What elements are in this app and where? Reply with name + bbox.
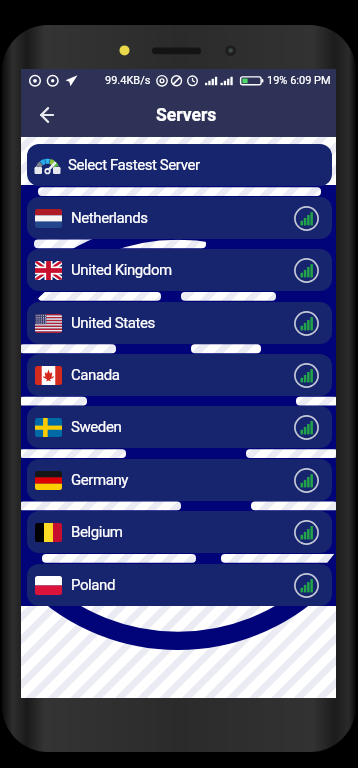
staticText: Poland [71, 576, 115, 594]
staticText: Belgium [71, 523, 123, 541]
button[interactable]: Belgium [27, 511, 332, 553]
staticText: United States [71, 314, 155, 332]
button[interactable]: Canada [27, 354, 332, 396]
staticText: Select Fastest Server [68, 156, 200, 174]
button[interactable]: Poland [27, 564, 332, 606]
button[interactable]: United States [27, 302, 332, 344]
staticText: Canada [71, 366, 120, 384]
staticText: Servers [156, 105, 217, 126]
button[interactable]: Select Fastest Server [27, 144, 332, 186]
staticText: Netherlands [71, 209, 148, 227]
button[interactable]: Sweden [27, 406, 332, 448]
staticText: Sweden [71, 418, 122, 436]
staticText: 19% 6:09 PM [267, 74, 331, 87]
staticText: 99.4KB/s [105, 74, 151, 87]
staticText: United Kingdom [71, 261, 172, 279]
button[interactable]: Netherlands [27, 197, 332, 239]
button[interactable]: Back [27, 93, 71, 137]
button[interactable]: United Kingdom [27, 249, 332, 291]
staticText: Germany [71, 471, 129, 489]
button[interactable]: Germany [27, 459, 332, 501]
